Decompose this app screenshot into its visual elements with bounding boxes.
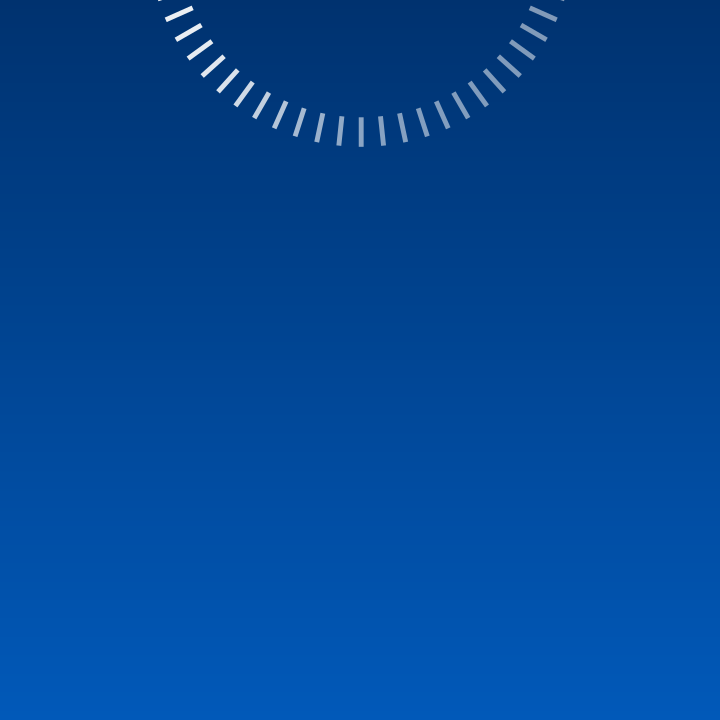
button[interactable]: Dial (0, 0, 720, 720)
